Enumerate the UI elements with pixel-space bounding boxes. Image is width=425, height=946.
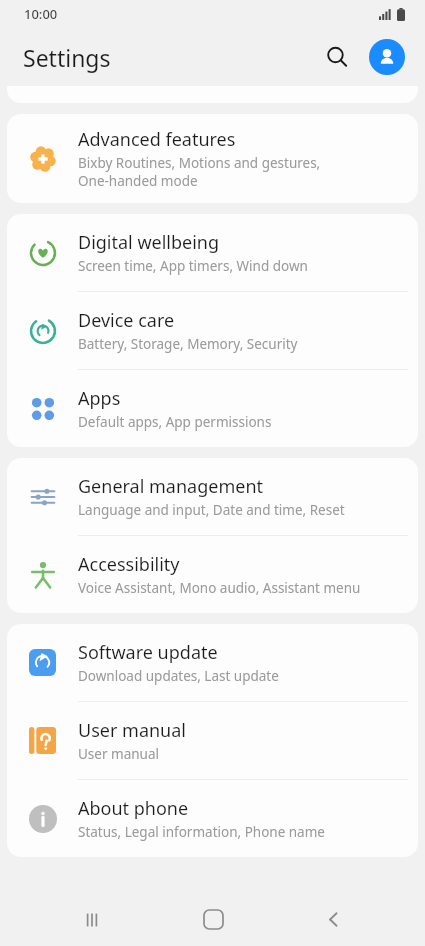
staticText: Voice Assistant, Mono audio, Assistant m… [78,579,361,597]
staticText: User manual [78,745,159,763]
button[interactable]: General management [7,458,418,535]
button[interactable]: Search [315,35,359,79]
staticText: Accessibility [78,552,180,577]
staticText: Language and input, Date and time, Reset [78,501,345,519]
button[interactable]: About phone [7,780,418,857]
button[interactable]: Accessibility [7,536,418,613]
button[interactable]: Advanced features [7,114,418,203]
staticText: Download updates, Last update [78,667,279,685]
staticText: Software update [78,640,218,665]
button[interactable]: Recents [64,893,120,946]
staticText: User manual [78,718,186,743]
staticText: 10:00 [24,5,58,23]
staticText: Device care [78,308,175,333]
button[interactable]: Software update [7,624,418,701]
staticText: Status, Legal information, Phone name [78,823,325,841]
staticText: Apps [78,386,121,411]
button[interactable]: User manual [7,702,418,779]
button[interactable]: Home [185,893,241,946]
staticText: Bixby Routines, Motions and gestures, On… [78,154,321,190]
staticText: Default apps, App permissions [78,413,272,431]
staticText: Advanced features [78,127,236,152]
staticText: Digital wellbeing [78,230,220,255]
button[interactable]: Account [369,39,405,75]
button[interactable]: Back [305,893,361,946]
staticText: General management [78,474,264,499]
button[interactable]: Digital wellbeing [7,214,418,291]
button[interactable]: Device care [7,292,418,369]
staticText: Battery, Storage, Memory, Security [78,335,298,353]
staticText: Settings [23,42,111,73]
staticText: Screen time, App timers, Wind down [78,257,308,275]
staticText: About phone [78,796,189,821]
button[interactable]: Apps [7,370,418,447]
